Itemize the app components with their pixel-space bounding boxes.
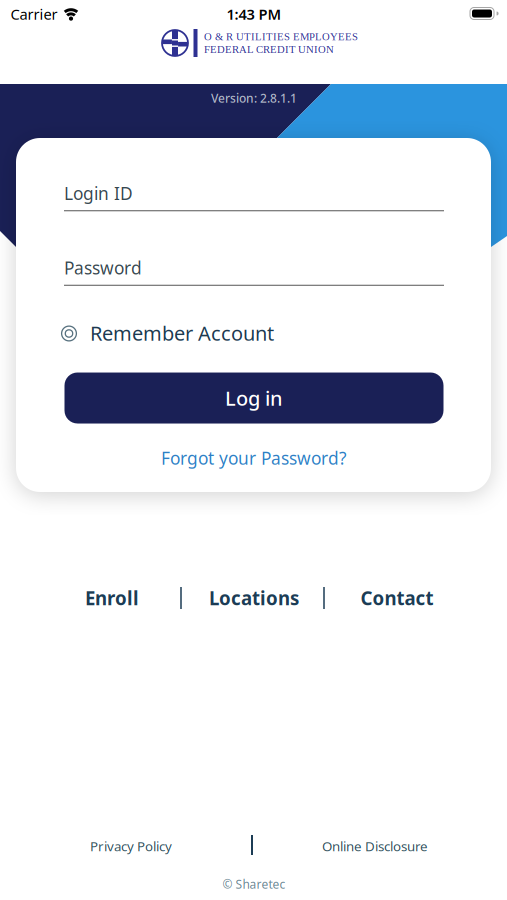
staticText: Contact: [360, 586, 433, 610]
staticText: Remember Account: [90, 320, 274, 346]
button[interactable]: Forgot your Password?: [161, 446, 347, 469]
staticText: FEDERAL CREDIT UNION: [204, 43, 334, 55]
staticText: Locations: [209, 586, 299, 610]
staticText: 1:43 PM: [226, 4, 281, 24]
staticText: © Sharetec: [222, 876, 285, 892]
button[interactable]: Login ID: [64, 182, 444, 211]
staticText: O & R UTILITIES EMPLOYEES: [204, 31, 358, 42]
staticText: Forgot your Password?: [161, 446, 347, 469]
button[interactable]: Password: [64, 256, 444, 286]
button[interactable]: Log in: [64, 372, 443, 423]
staticText: Login ID: [64, 182, 133, 205]
button[interactable]: Enroll: [85, 586, 139, 610]
staticText: Online Disclosure: [322, 837, 428, 855]
button[interactable]: Online Disclosure: [322, 837, 428, 855]
staticText: Password: [64, 256, 142, 279]
staticText: Version: 2.8.1.1: [211, 90, 297, 106]
staticText: Enroll: [85, 586, 139, 610]
button[interactable]: Privacy Policy: [90, 837, 172, 855]
button[interactable]: Remember Account: [60, 320, 448, 346]
staticText: Privacy Policy: [90, 837, 172, 855]
staticText: Carrier: [10, 4, 57, 24]
staticText: Log in: [225, 385, 283, 411]
button[interactable]: Locations: [209, 586, 299, 610]
button[interactable]: Contact: [360, 586, 433, 610]
